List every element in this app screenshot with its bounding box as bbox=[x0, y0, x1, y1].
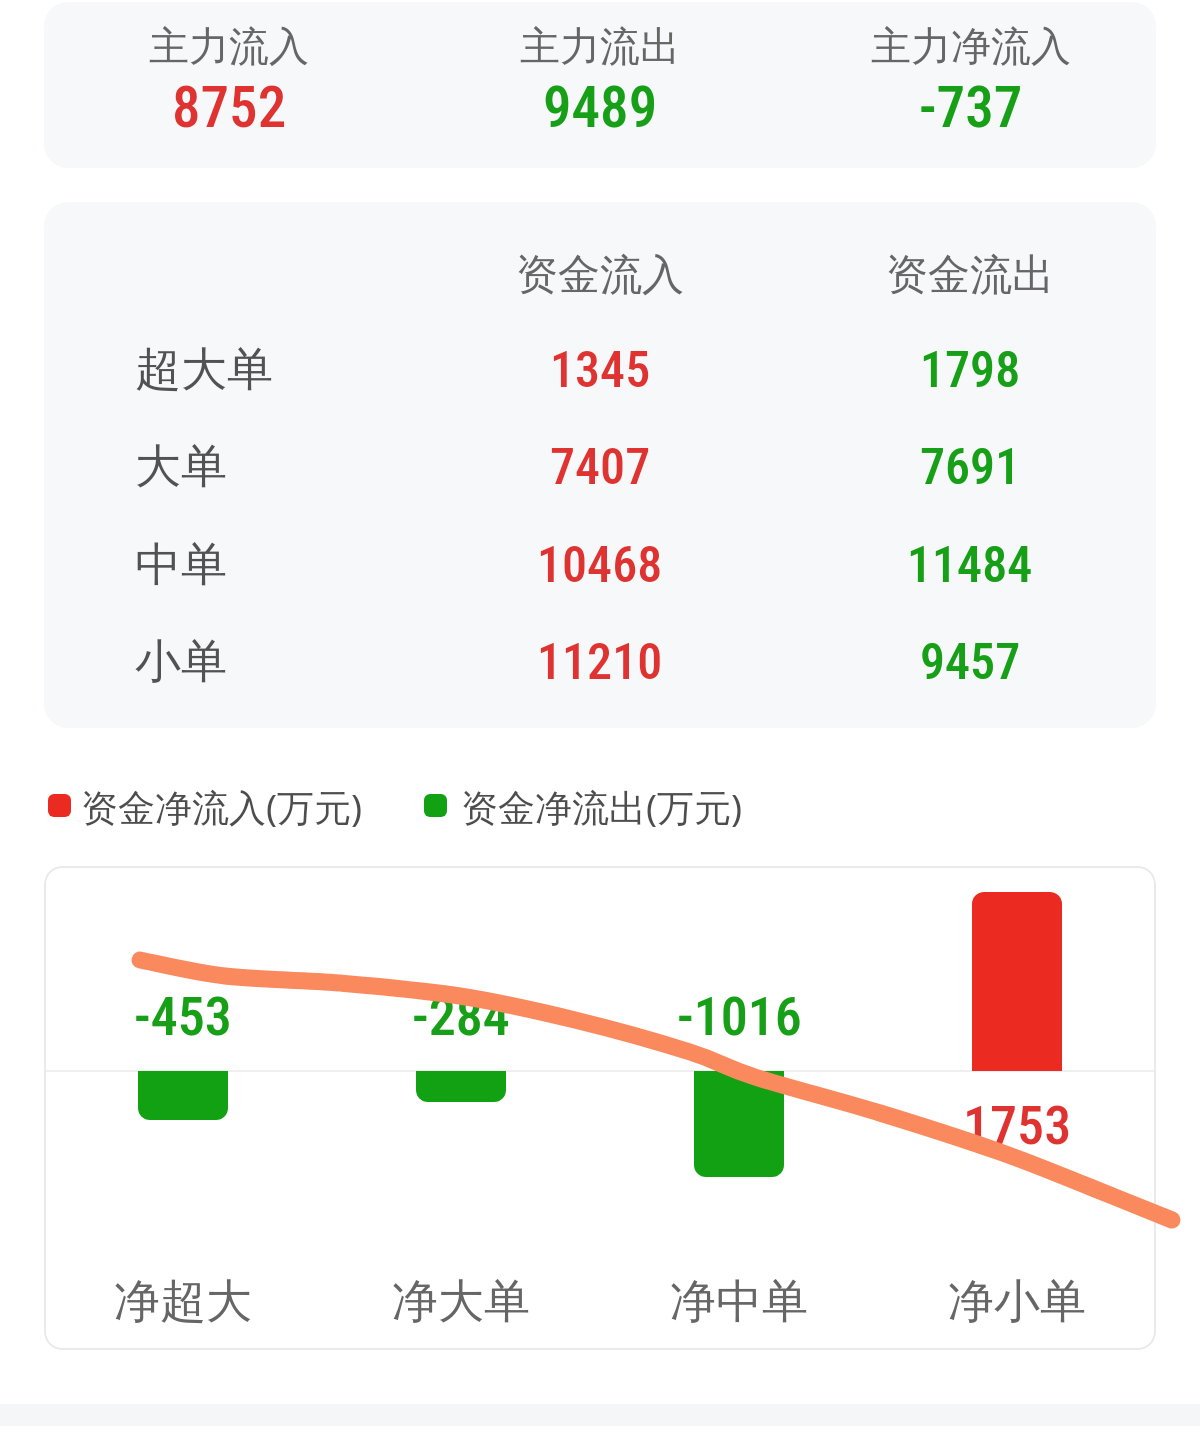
staticText: 7691 bbox=[920, 438, 1021, 497]
staticText: 小单 bbox=[135, 633, 227, 691]
staticText: -284 bbox=[412, 985, 510, 1048]
staticText: 净超大 bbox=[114, 1273, 252, 1331]
staticText: 中单 bbox=[135, 536, 227, 594]
staticText: 11210 bbox=[537, 633, 663, 692]
staticText: 净小单 bbox=[948, 1273, 1086, 1331]
button[interactable]: 资金流入 bbox=[44, 202, 1156, 728]
staticText: 主力流出 bbox=[520, 21, 680, 71]
staticText: 9489 bbox=[543, 74, 658, 141]
staticText: 10468 bbox=[537, 536, 663, 595]
staticText: 1345 bbox=[550, 341, 651, 400]
staticText: 8752 bbox=[172, 74, 287, 141]
button[interactable] bbox=[48, 794, 71, 817]
staticText: 主力净流入 bbox=[871, 21, 1071, 71]
staticText: 净大单 bbox=[392, 1273, 530, 1331]
staticText: 1798 bbox=[920, 341, 1021, 400]
staticText: -453 bbox=[134, 985, 232, 1048]
button[interactable]: -453 bbox=[44, 866, 1156, 1350]
staticText: 资金流出 bbox=[886, 249, 1054, 302]
staticText: 资金净流出(万元) bbox=[461, 781, 743, 832]
button[interactable] bbox=[424, 794, 447, 817]
staticText: 大单 bbox=[135, 438, 227, 496]
staticText: 11484 bbox=[907, 536, 1033, 595]
staticText: -1016 bbox=[677, 985, 802, 1048]
button[interactable]: 主力流入 bbox=[44, 2, 1156, 168]
staticText: 超大单 bbox=[135, 341, 273, 399]
staticText: 7407 bbox=[550, 438, 651, 497]
staticText: 主力流入 bbox=[149, 21, 309, 71]
staticText: 9457 bbox=[920, 633, 1021, 692]
staticText: 净中单 bbox=[670, 1273, 808, 1331]
staticText: 资金流入 bbox=[516, 249, 684, 302]
staticText: 资金净流入(万元) bbox=[81, 781, 363, 832]
staticText: -737 bbox=[919, 74, 1023, 141]
staticText: 1753 bbox=[963, 1094, 1072, 1157]
